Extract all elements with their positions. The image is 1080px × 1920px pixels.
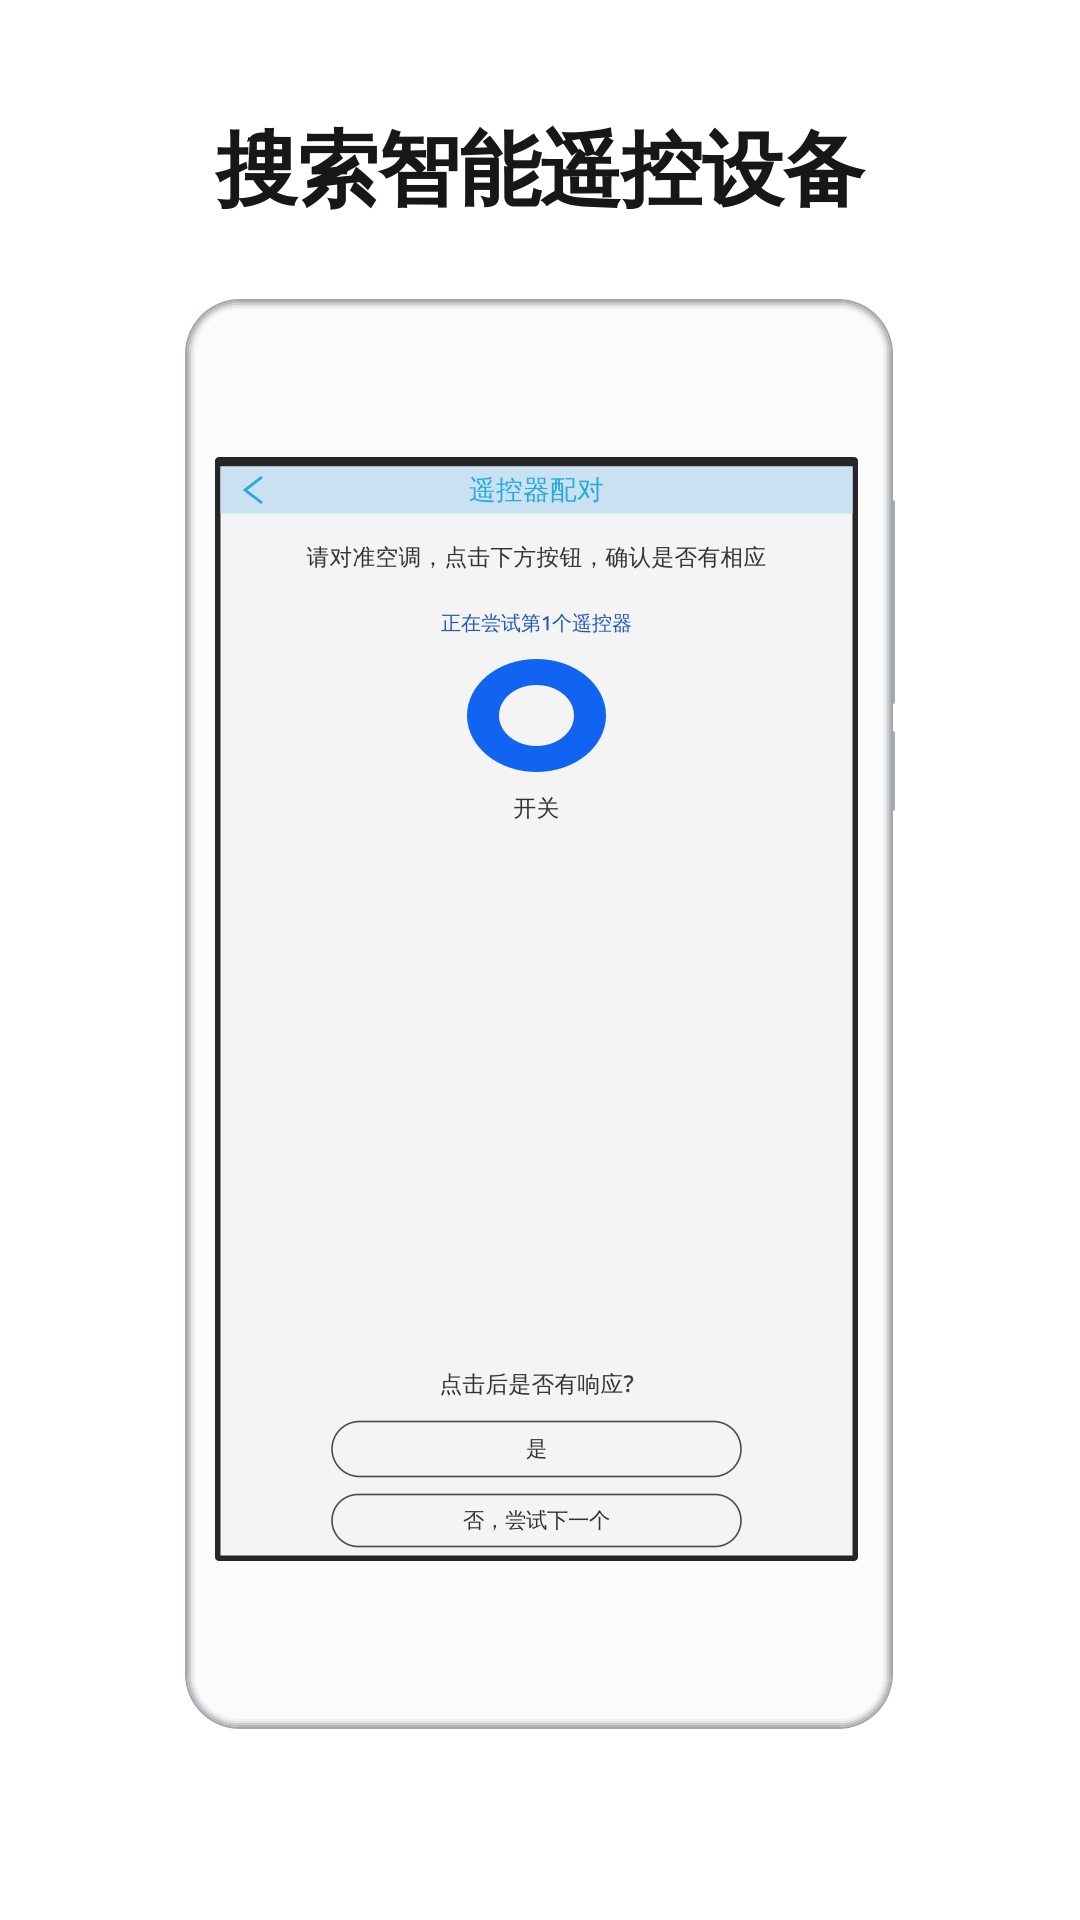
staticText: 正在尝试第1个遥控器 — [441, 609, 632, 636]
staticText: 遥控器配对 — [469, 474, 604, 506]
staticText: 否，尝试下一个 — [463, 1507, 610, 1534]
staticText: 请对准空调，点击下方按钮，确认是否有相应 — [306, 544, 766, 571]
staticText: 搜索智能遥控设备 — [216, 121, 864, 221]
staticText: 是 — [526, 1436, 547, 1462]
button[interactable]: 返回 — [220, 466, 286, 513]
staticText: 开关 — [513, 795, 559, 822]
button[interactable]: 开关 — [466, 658, 606, 772]
staticText: 点击后是否有响应? — [439, 1368, 633, 1398]
button[interactable]: 否，尝试下一个 — [332, 1494, 741, 1546]
button[interactable]: 是 — [332, 1421, 741, 1476]
